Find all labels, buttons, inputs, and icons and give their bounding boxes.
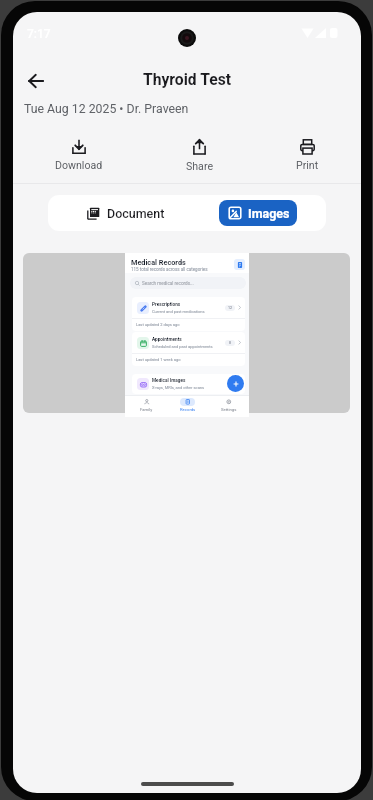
staticText: X-rays, MRIs, and other scans	[152, 385, 205, 390]
staticText: Records	[180, 407, 196, 412]
button[interactable]: Print	[296, 139, 319, 171]
staticText: 12	[228, 306, 233, 310]
staticText: Medical Images	[152, 378, 186, 384]
button[interactable]: Share	[186, 139, 213, 172]
staticText: Medical Records	[131, 258, 186, 267]
button[interactable]: Prescriptions	[132, 297, 245, 331]
button[interactable]: Medical Images	[132, 374, 245, 394]
button[interactable]: Settings	[208, 395, 249, 417]
staticText: 7:17	[27, 27, 51, 41]
staticText: Current and past medications	[152, 309, 205, 314]
staticText: Images	[248, 206, 290, 221]
staticText: Tue Aug 12 2025 • Dr. Praveen	[24, 102, 189, 116]
staticText: Last updated 2 days ago	[136, 322, 180, 327]
button[interactable]: Search medical records...	[130, 277, 246, 289]
staticText: Last updated 1 week ago	[136, 357, 181, 362]
button[interactable]: Images	[219, 200, 297, 226]
staticText: Download	[55, 159, 103, 171]
staticText: Scheduled and past appointments	[152, 344, 213, 349]
button[interactable]: Back	[22, 66, 52, 96]
button[interactable]: Add record	[227, 375, 244, 392]
button[interactable]: Family	[125, 395, 167, 417]
staticText: Family	[140, 407, 153, 412]
button[interactable]: Records	[167, 395, 208, 417]
button[interactable]: Document	[82, 195, 170, 231]
staticText: 8	[229, 341, 232, 345]
button[interactable]: Appointments	[132, 332, 245, 366]
staticText: Print	[296, 159, 319, 171]
staticText: Share	[186, 160, 213, 172]
staticText: Document	[107, 206, 165, 221]
staticText: Search medical records...	[142, 281, 194, 286]
staticText: 115 total records across all categories	[131, 267, 208, 272]
button[interactable]: Download	[55, 139, 103, 171]
staticText: Thyroid Test	[13, 70, 361, 88]
staticText: Prescriptions	[152, 302, 181, 308]
staticText: Settings	[221, 407, 237, 412]
staticText: Appointments	[152, 337, 182, 343]
button[interactable]: Export	[234, 259, 245, 270]
